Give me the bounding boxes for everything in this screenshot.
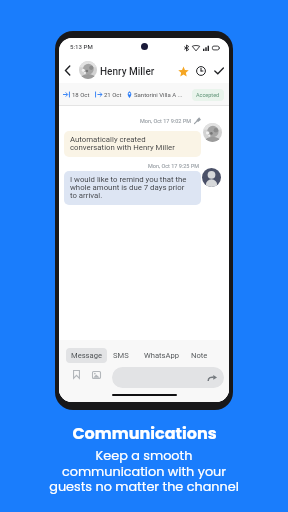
staticText: Communications bbox=[72, 422, 217, 444]
staticText: Keep a smooth communication with your gu… bbox=[49, 447, 239, 496]
button[interactable]: Saved replies bbox=[69, 367, 84, 382]
button[interactable]: WhatsApp bbox=[144, 348, 179, 363]
button[interactable]: Automatically created conversation with … bbox=[64, 131, 201, 157]
button[interactable]: Message bbox=[66, 348, 107, 363]
staticText: Automatically created conversation with … bbox=[70, 135, 175, 152]
staticText: WhatsApp bbox=[144, 351, 179, 360]
staticText: Message bbox=[71, 351, 102, 360]
staticText: Mon, Oct 17 9:25 PM bbox=[148, 163, 200, 169]
button[interactable]: SMS bbox=[111, 348, 130, 363]
button[interactable]: Back bbox=[60, 63, 75, 78]
staticText: 21 Oct bbox=[104, 91, 122, 98]
button[interactable]: Accepted bbox=[192, 89, 224, 101]
button[interactable]: Forward bbox=[112, 367, 224, 388]
staticText: Mon, Oct 17 9:02 PM bbox=[140, 118, 192, 124]
button[interactable]: Attach image bbox=[89, 367, 104, 382]
button[interactable]: Favourite bbox=[174, 62, 192, 80]
staticText: 18 Oct bbox=[72, 91, 90, 98]
button[interactable]: Note bbox=[188, 348, 210, 363]
button[interactable]: History bbox=[192, 62, 210, 80]
staticText: Henry Miller bbox=[100, 66, 155, 78]
staticText: 5:13 PM bbox=[70, 43, 93, 50]
staticText: I would like to remind you that the whol… bbox=[70, 175, 187, 200]
staticText: Accepted bbox=[196, 92, 220, 98]
staticText: SMS bbox=[113, 351, 129, 360]
button[interactable]: Done bbox=[210, 62, 228, 80]
button[interactable]: I would like to remind you that the whol… bbox=[64, 171, 201, 205]
staticText: Santorini Villa A ... bbox=[134, 91, 183, 98]
staticText: Note bbox=[191, 351, 208, 360]
other: Forward bbox=[208, 375, 217, 381]
